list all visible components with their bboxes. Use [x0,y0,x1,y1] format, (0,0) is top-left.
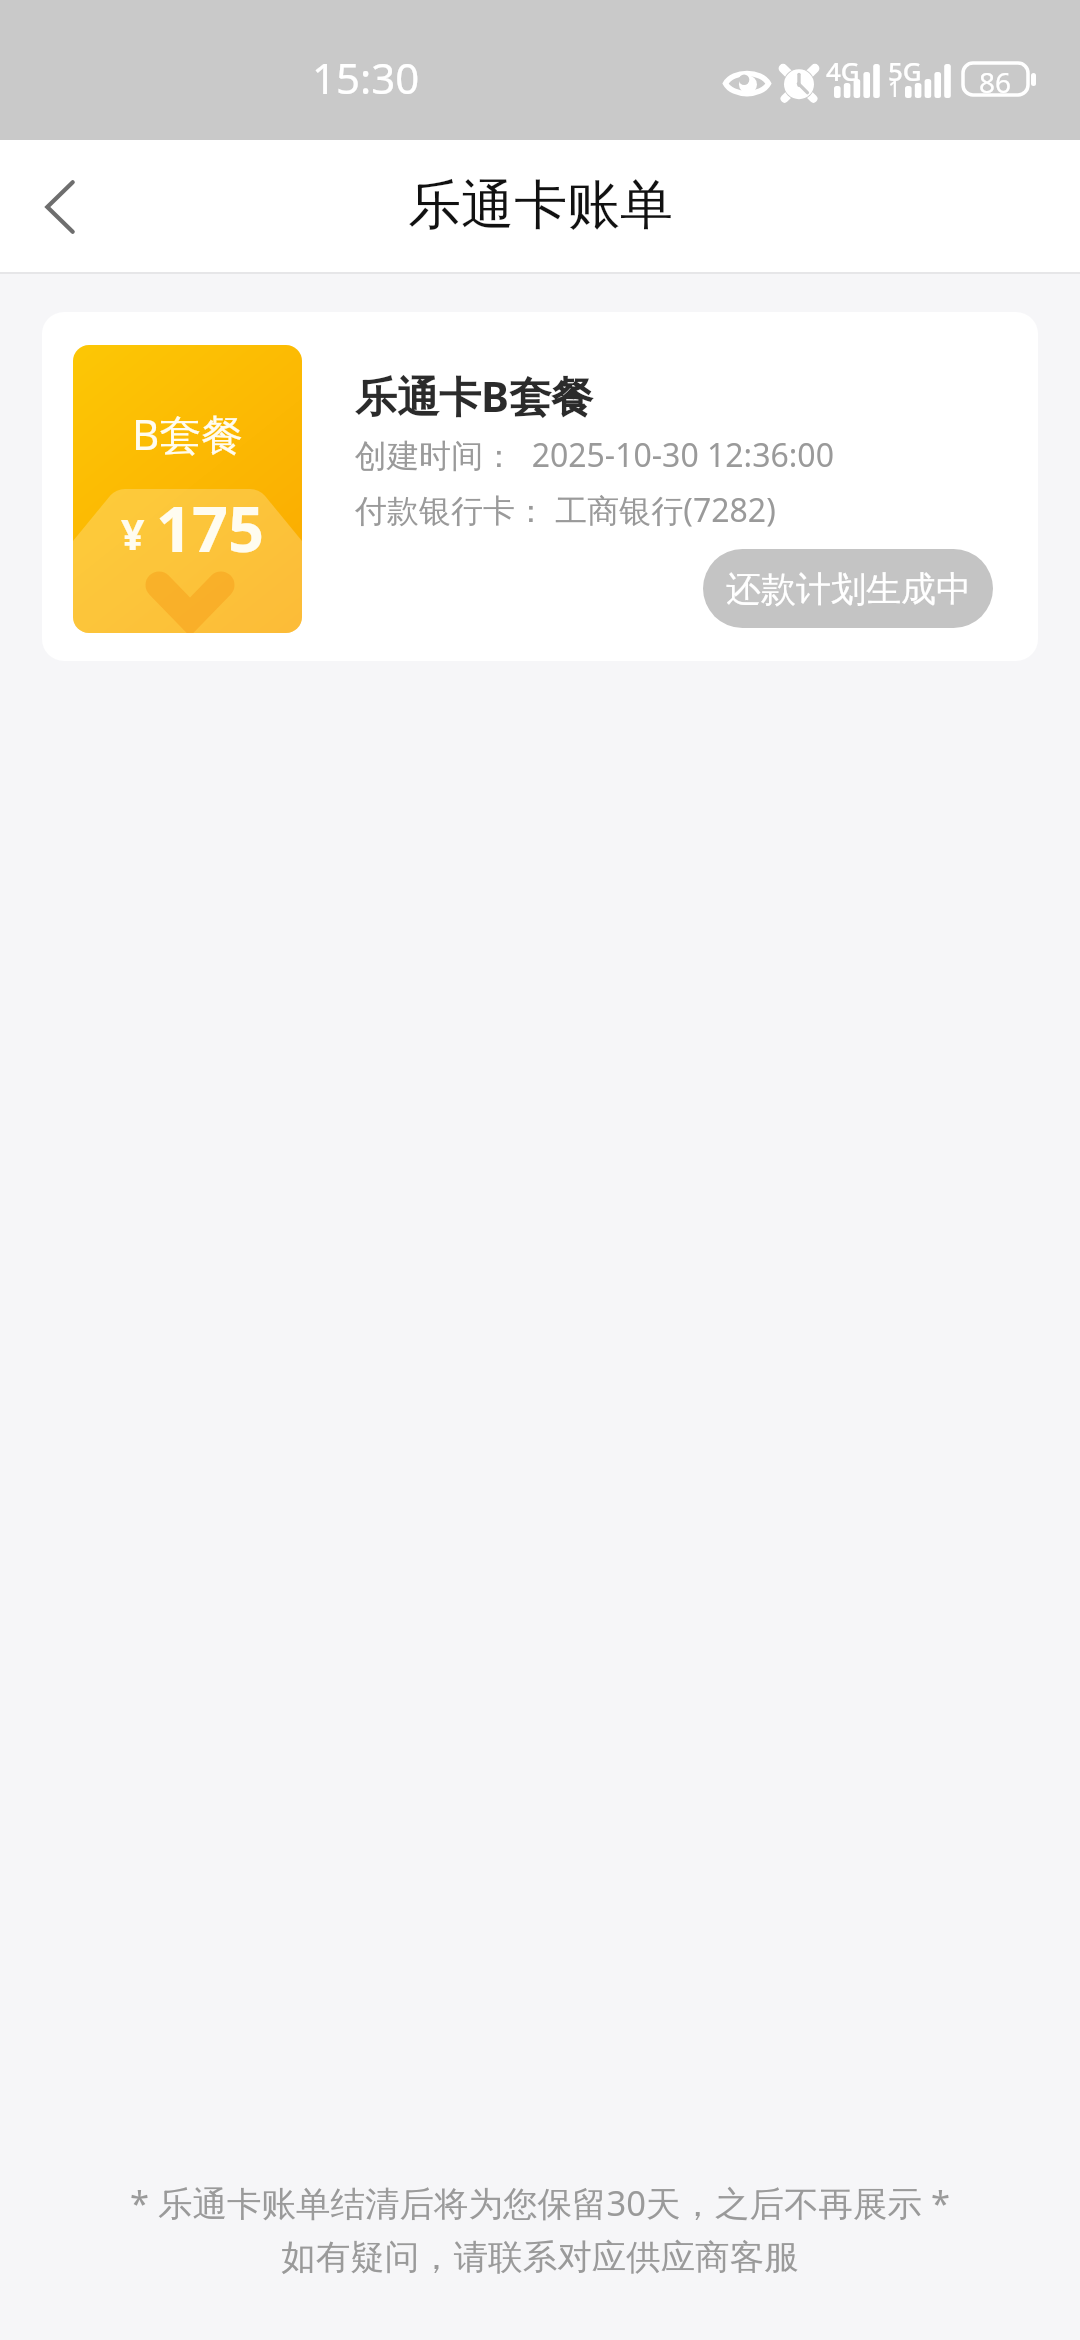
staticText: 如有疑问，请联系对应供应商客服 [281,2236,799,2279]
staticText: 15:30 [312,49,420,106]
staticText: 86 [979,63,1012,95]
staticText: 1 [888,73,901,103]
staticText: 5G [888,53,922,88]
staticText: 付款银行卡： 工商银行(7282) [355,488,776,532]
staticText: 乐通卡账单 [408,172,673,239]
staticText: 175 [156,485,265,571]
staticText: B套餐 [132,405,244,462]
button[interactable]: Back [0,140,120,274]
button[interactable]: 还款计划生成中 [703,549,993,628]
staticText: 创建时间： 2025-10-30 12:36:00 [355,433,834,477]
staticText: ¥ [121,506,145,562]
staticText: 4G [826,53,860,88]
staticText: 还款计划生成中 [726,567,971,611]
staticText: 乐通卡B套餐 [355,367,593,424]
button[interactable]: B套餐 [42,312,1038,661]
staticText: * 乐通卡账单结清后将为您保留30天，之后不再展示 * [130,2179,950,2226]
